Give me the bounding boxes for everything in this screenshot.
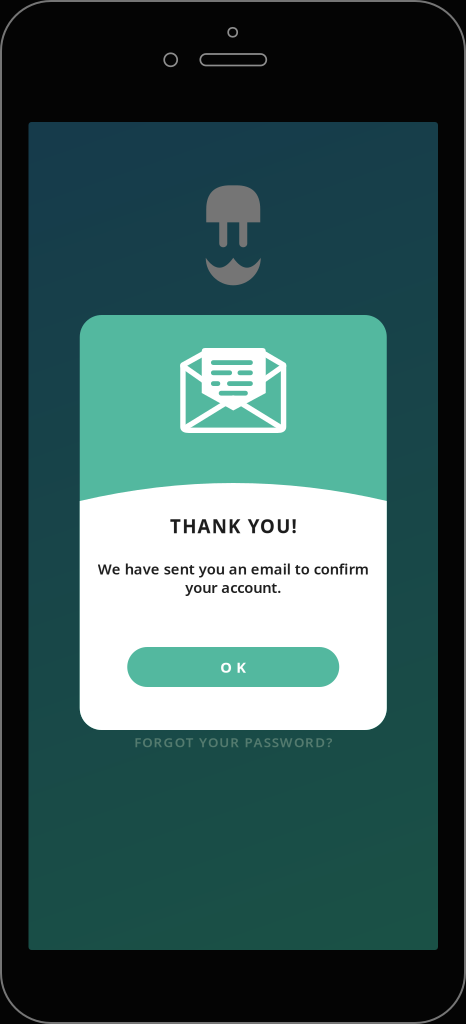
staticText: your account. [185, 577, 281, 597]
staticText: O K [220, 657, 246, 677]
staticText: We have sent you an email to confirm [98, 559, 369, 578]
button[interactable]: FORGOT YOUR PASSWORD? [28, 730, 438, 754]
staticText: FORGOT YOUR PASSWORD? [134, 733, 332, 751]
staticText: THANK YOU! [170, 514, 297, 538]
button[interactable]: O K [127, 647, 339, 687]
